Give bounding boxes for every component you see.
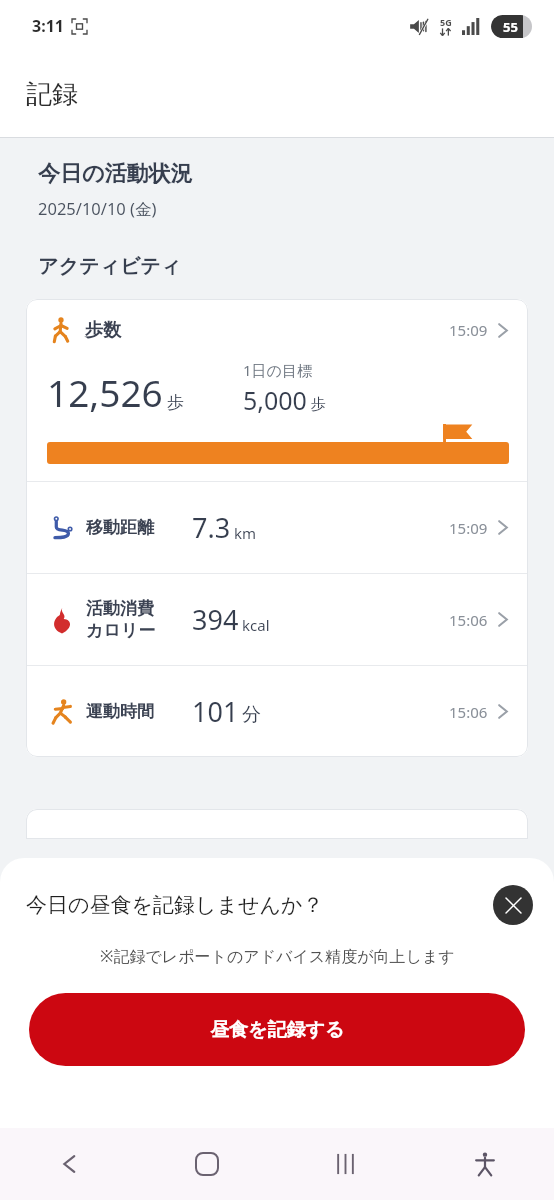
staticText: 15:06	[449, 702, 488, 722]
staticText: 12,526	[47, 367, 163, 417]
button[interactable]: 戻る	[0, 1128, 138, 1200]
button[interactable]: 最近のアプリ	[276, 1128, 415, 1200]
staticText: kcal	[242, 615, 270, 635]
staticText: 15:06	[449, 610, 488, 630]
staticText: 2025/10/10 (金)	[38, 197, 157, 220]
button[interactable]: 移動距離	[26, 482, 528, 573]
staticText: 運動時間	[86, 701, 154, 722]
staticText: 101	[192, 693, 239, 730]
staticText: アクティビティ	[38, 254, 182, 279]
staticText: 歩数	[85, 319, 121, 342]
staticText: 55	[503, 18, 518, 36]
staticText: 今日の活動状況	[38, 160, 193, 188]
button[interactable]: 運動時間	[26, 666, 528, 757]
staticText: 歩	[311, 395, 326, 414]
staticText: 394	[192, 601, 239, 638]
button[interactable]: 昼食を記録する	[29, 993, 525, 1066]
button[interactable]: 歩数	[26, 299, 528, 481]
staticText: 分	[242, 703, 261, 727]
staticText: 5G	[440, 16, 452, 28]
staticText: 移動距離	[86, 517, 154, 538]
staticText: 昼食を記録する	[210, 1018, 345, 1042]
button[interactable]: 閉じる	[493, 885, 533, 925]
staticText: 5,000	[243, 383, 307, 417]
button[interactable]: ホーム	[138, 1128, 276, 1200]
button[interactable]: ユーザー補助	[415, 1128, 554, 1200]
staticText: 1日の目標	[243, 360, 312, 380]
button[interactable]: 活動消費 カロリー	[26, 574, 528, 665]
staticText: 3:11	[32, 15, 64, 37]
staticText: 15:09	[449, 518, 488, 538]
staticText: ※記録でレポートのアドバイス精度が向上します	[100, 945, 455, 967]
staticText: 7.3	[192, 509, 231, 546]
staticText: 歩	[167, 392, 184, 413]
staticText: 今日の昼食を記録しませんか？	[26, 892, 324, 918]
staticText: 活動消費 カロリー	[86, 598, 156, 641]
staticText: 記録	[26, 78, 78, 111]
staticText: km	[234, 523, 257, 543]
staticText: 15:09	[449, 320, 488, 340]
